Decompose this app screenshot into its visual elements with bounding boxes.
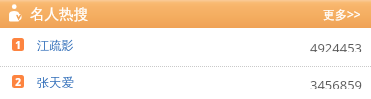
staticText: 4924453 xyxy=(310,39,363,52)
button[interactable]: 更多>> xyxy=(313,2,371,26)
button[interactable]: 2 xyxy=(0,65,371,99)
staticText: 名人热搜 xyxy=(30,5,88,23)
staticText: 张天爱 xyxy=(37,75,74,88)
staticText: 2 xyxy=(15,75,21,88)
staticText: 江疏影 xyxy=(37,38,74,51)
button[interactable]: 1 xyxy=(0,28,371,65)
staticText: 更多>> xyxy=(323,6,361,22)
staticText: 3456859 xyxy=(310,76,363,89)
staticText: 1 xyxy=(15,38,21,51)
other: Celebrity hot search xyxy=(9,4,22,22)
